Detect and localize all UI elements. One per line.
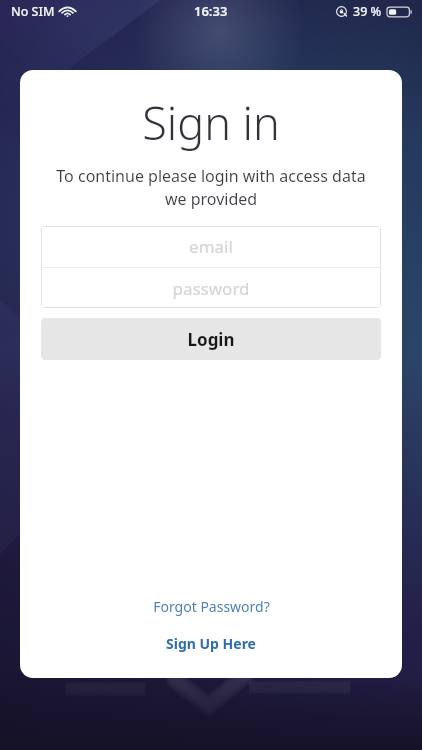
staticText: No SIM	[11, 3, 55, 20]
button[interactable]: Login	[41, 318, 381, 360]
staticText: Sign Up Here	[166, 634, 256, 653]
button[interactable]: email	[41, 226, 381, 267]
staticText: Forgot Password?	[153, 597, 270, 616]
staticText: password	[172, 277, 250, 300]
staticText: Sign in	[142, 92, 280, 153]
staticText: To continue please login with access dat…	[38, 165, 384, 210]
button[interactable]: Sign Up Here	[152, 629, 270, 658]
staticText: 39 %	[353, 3, 382, 20]
button[interactable]: Forgot Password?	[139, 592, 284, 621]
staticText: email	[189, 235, 233, 258]
staticText: Login	[187, 328, 235, 351]
button[interactable]: password	[41, 268, 381, 308]
staticText: 16:33	[194, 2, 228, 20]
